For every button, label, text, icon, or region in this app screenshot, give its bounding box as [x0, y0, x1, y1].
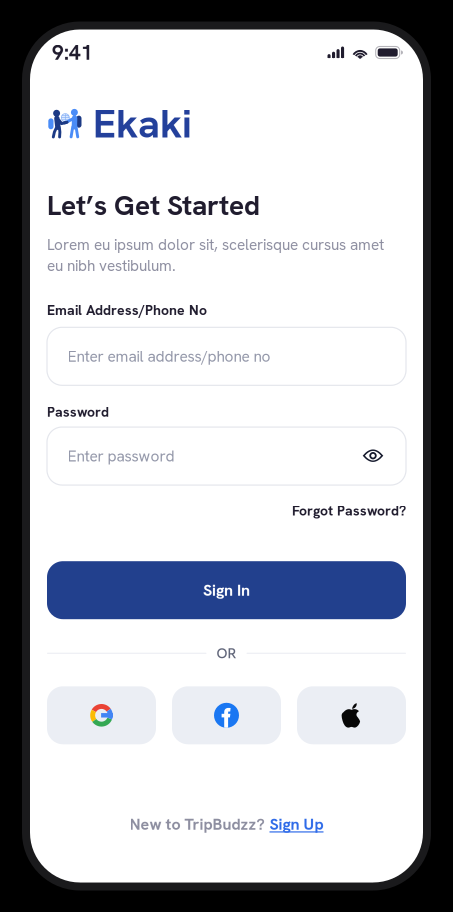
- staticText: Forgot Password?: [292, 501, 406, 520]
- staticText: Password: [47, 403, 109, 421]
- staticText: Sign In: [203, 580, 250, 601]
- staticText: Lorem eu ipsum dolor sit, scelerisque cu…: [47, 235, 384, 276]
- button[interactable]: Sign In: [47, 561, 406, 619]
- staticText: Sign Up: [269, 814, 323, 834]
- staticText: Enter email address/phone no: [67, 346, 270, 366]
- button[interactable]: Sign in with Facebook: [172, 686, 281, 744]
- staticText: OR: [216, 644, 236, 663]
- staticText: Let’s Get Started: [47, 187, 260, 224]
- staticText: Email Address/Phone No: [47, 301, 207, 319]
- staticText: 9:41: [52, 39, 93, 66]
- staticText: Enter password: [67, 446, 174, 466]
- staticText: Ekaki: [93, 97, 192, 150]
- button[interactable]: Sign in with Google: [47, 686, 156, 744]
- button[interactable]: Sign Up: [269, 814, 323, 834]
- button[interactable]: Sign in with Apple: [297, 686, 406, 744]
- button[interactable]: Forgot Password?: [292, 501, 406, 520]
- staticText: New to TripBudzz?: [129, 814, 264, 834]
